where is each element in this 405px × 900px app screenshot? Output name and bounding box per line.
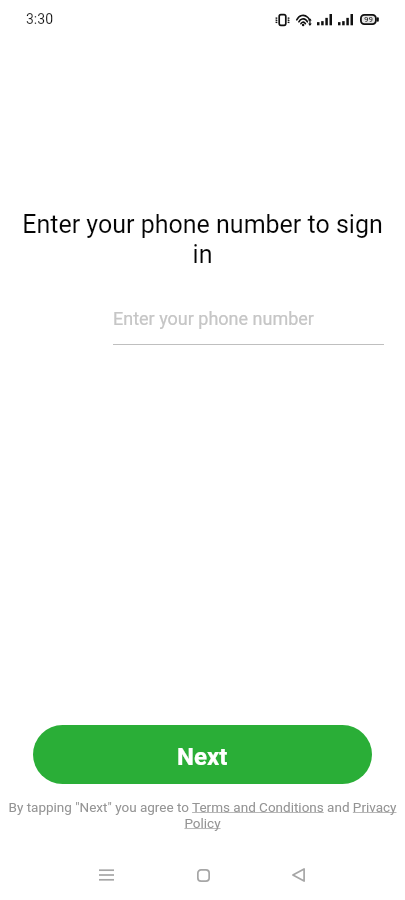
button[interactable]: Back [283,860,313,890]
button[interactable]: Next [33,725,372,784]
button[interactable]: Enter your phone number [113,308,384,345]
staticText: By tapping "Next" you agree to Terms and… [7,799,398,831]
staticText: 99 [364,15,374,24]
staticText: 3:30 [26,11,53,27]
button[interactable]: Home [188,860,218,890]
staticText: Enter your phone number [113,308,314,329]
button[interactable]: Recents [91,860,121,890]
staticText: Next [177,743,228,771]
staticText: Enter your phone number to sign in [22,210,383,269]
